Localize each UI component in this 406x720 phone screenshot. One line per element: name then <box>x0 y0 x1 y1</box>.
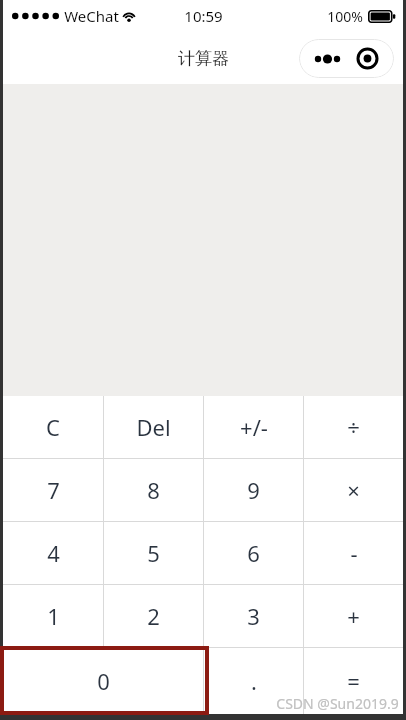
staticText: CSDN @Sun2019.9 <box>276 694 399 713</box>
button[interactable]: 3 <box>204 585 303 647</box>
staticText: 100% <box>327 7 363 26</box>
staticText: × <box>347 475 360 505</box>
button[interactable]: × <box>304 459 403 521</box>
button[interactable]: C <box>3 396 103 458</box>
staticText: 计算器 <box>178 48 229 69</box>
button[interactable]: . <box>204 648 303 714</box>
button[interactable]: 0 <box>3 648 203 714</box>
staticText: + <box>347 601 360 631</box>
staticText: 8 <box>147 475 160 505</box>
staticText: WeChat <box>64 6 119 26</box>
button[interactable]: 4 <box>3 522 103 584</box>
staticText: 4 <box>47 538 60 568</box>
button[interactable]: + <box>304 585 403 647</box>
button[interactable]: = <box>304 648 403 714</box>
staticText: 3 <box>247 601 260 631</box>
button[interactable]: 5 <box>104 522 203 584</box>
button[interactable]: 1 <box>3 585 103 647</box>
staticText: - <box>350 538 358 568</box>
staticText: 1 <box>47 601 60 631</box>
staticText: 10:59 <box>184 6 223 26</box>
button[interactable]: +/- <box>204 396 303 458</box>
staticText: 0 <box>97 666 110 696</box>
staticText: 7 <box>47 475 60 505</box>
staticText: 2 <box>147 601 160 631</box>
button[interactable]: 7 <box>3 459 103 521</box>
staticText: ÷ <box>347 412 360 442</box>
button[interactable]: ÷ <box>304 396 403 458</box>
button[interactable]: 9 <box>204 459 303 521</box>
button[interactable]: Mini program menu and close <box>299 39 394 78</box>
button[interactable]: - <box>304 522 403 584</box>
button[interactable]: 8 <box>104 459 203 521</box>
staticText: C <box>46 412 60 442</box>
button[interactable]: 6 <box>204 522 303 584</box>
staticText: 6 <box>247 538 260 568</box>
staticText: = <box>347 666 360 696</box>
staticText: +/- <box>240 412 268 442</box>
staticText: 9 <box>247 475 260 505</box>
button[interactable]: Del <box>104 396 203 458</box>
staticText: . <box>251 666 257 696</box>
button[interactable]: 2 <box>104 585 203 647</box>
staticText: Del <box>136 412 171 442</box>
staticText: 5 <box>147 538 160 568</box>
